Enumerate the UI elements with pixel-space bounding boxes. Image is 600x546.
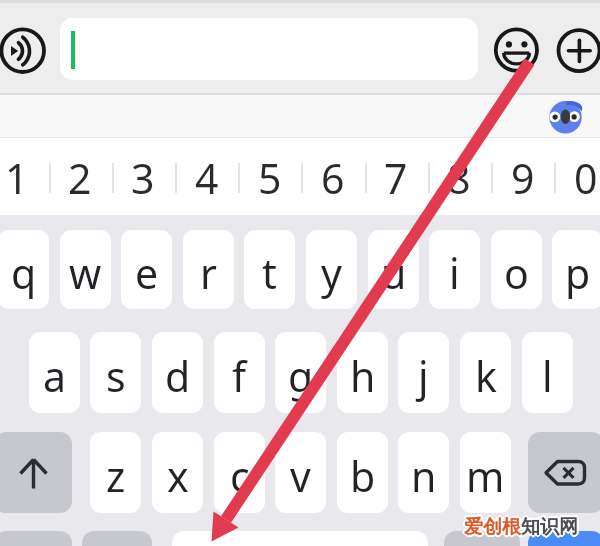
staticText: 爱创根知识网: [463, 516, 577, 540]
button[interactable]: 8: [428, 138, 490, 215]
button[interactable]: [172, 531, 428, 546]
staticText: 9: [511, 150, 535, 206]
staticText: a: [43, 348, 67, 404]
button[interactable]: v: [275, 432, 326, 513]
button[interactable]: [528, 432, 600, 513]
button[interactable]: [0, 432, 72, 513]
staticText: 爱创根知识网: [464, 513, 578, 537]
button[interactable]: q: [0, 230, 49, 309]
button[interactable]: o: [491, 230, 542, 309]
button[interactable]: 3: [112, 138, 174, 215]
staticText: 爱创根知识网: [462, 515, 576, 539]
staticText: d: [165, 348, 191, 404]
staticText: 爱创根知识网: [464, 517, 578, 541]
staticText: m: [466, 448, 505, 504]
button[interactable]: a: [29, 332, 80, 413]
staticText: 爱创根知识网: [464, 515, 578, 539]
staticText: 2: [68, 150, 92, 206]
staticText: q: [11, 245, 37, 301]
staticText: 0: [574, 150, 598, 206]
staticText: 7: [384, 150, 408, 206]
button[interactable]: n: [398, 432, 449, 513]
staticText: g: [288, 348, 314, 404]
button[interactable]: i: [429, 230, 480, 309]
staticText: o: [504, 245, 529, 301]
button[interactable]: f: [214, 332, 265, 413]
button[interactable]: t: [244, 230, 295, 309]
staticText: 8: [447, 150, 471, 206]
button[interactable]: p: [552, 230, 600, 309]
button[interactable]: c: [214, 432, 265, 513]
staticText: j: [418, 348, 429, 404]
staticText: i: [449, 245, 460, 301]
staticText: y: [321, 245, 342, 301]
button[interactable]: e: [121, 230, 172, 309]
staticText: z: [106, 448, 126, 504]
staticText: 6: [321, 150, 345, 206]
button[interactable]: [494, 27, 539, 73]
staticText: 5: [258, 150, 282, 206]
button[interactable]: d: [152, 332, 203, 413]
staticText: 爱创根知识网: [465, 516, 579, 540]
staticText: 3: [131, 150, 155, 206]
button[interactable]: j: [398, 332, 449, 413]
button[interactable]: [556, 28, 600, 73]
button[interactable]: m: [460, 432, 511, 513]
staticText: b: [350, 448, 376, 504]
button[interactable]: g: [275, 332, 326, 413]
staticText: 爱创根知识网: [465, 514, 579, 538]
staticText: f: [232, 348, 247, 404]
button[interactable]: 6: [302, 138, 364, 215]
button[interactable]: h: [337, 332, 388, 413]
button[interactable]: [0, 27, 46, 75]
staticText: r: [200, 245, 217, 301]
staticText: w: [69, 245, 102, 301]
staticText: k: [475, 348, 497, 404]
button[interactable]: [0, 531, 72, 546]
staticText: x: [167, 448, 189, 504]
button[interactable]: s: [90, 332, 141, 413]
staticText: 1: [5, 150, 29, 206]
staticText: e: [135, 245, 159, 301]
staticText: v: [290, 448, 311, 504]
button[interactable]: [60, 18, 478, 80]
staticText: 4: [195, 150, 219, 206]
staticText: p: [565, 245, 591, 301]
button[interactable]: w: [60, 230, 111, 309]
staticText: h: [350, 348, 376, 404]
button[interactable]: 2: [49, 138, 111, 215]
button[interactable]: 9: [492, 138, 554, 215]
staticText: 爱创根知识网: [466, 515, 580, 539]
button[interactable]: [548, 99, 584, 136]
button[interactable]: 0: [555, 138, 600, 215]
button[interactable]: x: [152, 432, 203, 513]
staticText: n: [411, 448, 437, 504]
button[interactable]: l: [522, 332, 573, 413]
staticText: t: [262, 245, 277, 301]
button[interactable]: b: [337, 432, 388, 513]
button[interactable]: 7: [365, 138, 427, 215]
button[interactable]: 4: [176, 138, 238, 215]
staticText: 爱创根知识网: [463, 514, 577, 538]
button[interactable]: z: [90, 432, 141, 513]
button[interactable]: r: [183, 230, 234, 309]
staticText: c: [230, 448, 250, 504]
button[interactable]: 1: [0, 138, 48, 215]
button[interactable]: [528, 531, 600, 546]
button[interactable]: k: [460, 332, 511, 413]
staticText: u: [381, 245, 407, 301]
button[interactable]: y: [306, 230, 357, 309]
button[interactable]: [444, 531, 520, 546]
button[interactable]: [82, 531, 152, 546]
button[interactable]: 5: [239, 138, 301, 215]
staticText: l: [542, 348, 553, 404]
staticText: s: [106, 348, 126, 404]
button[interactable]: u: [368, 230, 419, 309]
